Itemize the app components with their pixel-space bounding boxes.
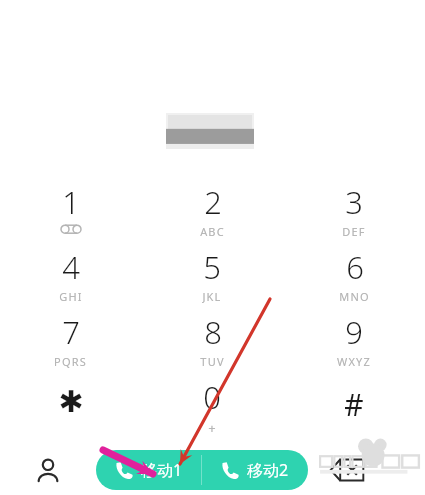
staticText: 0: [203, 376, 221, 418]
button[interactable]: ✱: [0, 376, 141, 433]
staticText: PQRS: [54, 354, 87, 368]
staticText: DEF: [342, 224, 366, 238]
button[interactable]: 3: [283, 181, 425, 238]
button[interactable]: 8: [141, 311, 283, 368]
button[interactable]: 1: [0, 181, 141, 238]
staticText: MNO: [339, 289, 370, 303]
button[interactable]: Backspace: [322, 447, 425, 493]
button[interactable]: 4: [0, 246, 141, 303]
staticText: 9: [345, 311, 363, 353]
staticText: JKL: [202, 289, 222, 303]
staticText: #: [344, 384, 364, 425]
button[interactable]: Contacts: [0, 447, 96, 493]
staticText: 2: [204, 181, 222, 223]
button[interactable]: 移动1: [96, 450, 201, 490]
staticText: 移动1: [141, 459, 183, 481]
button[interactable]: 0: [141, 376, 283, 433]
button[interactable]: 7: [0, 311, 141, 368]
staticText: ABC: [200, 224, 225, 238]
button[interactable]: 6: [283, 246, 425, 303]
staticText: 1: [62, 181, 80, 223]
staticText: +: [208, 419, 217, 433]
staticText: 3: [345, 181, 363, 223]
staticText: WXYZ: [337, 354, 371, 368]
staticText: ✱: [58, 384, 84, 419]
staticText: 8: [204, 311, 222, 353]
button[interactable]: 5: [141, 246, 283, 303]
button[interactable]: 9: [283, 311, 425, 368]
staticText: GHI: [59, 289, 83, 303]
staticText: 移动2: [247, 459, 289, 481]
staticText: 4: [62, 246, 80, 288]
staticText: 7: [62, 311, 80, 353]
staticText: TUV: [200, 354, 225, 368]
button[interactable]: #: [283, 376, 425, 433]
button[interactable]: 2: [141, 181, 283, 238]
button[interactable]: 移动2: [202, 450, 308, 490]
staticText: 6: [346, 246, 364, 288]
staticText: 5: [203, 246, 221, 288]
